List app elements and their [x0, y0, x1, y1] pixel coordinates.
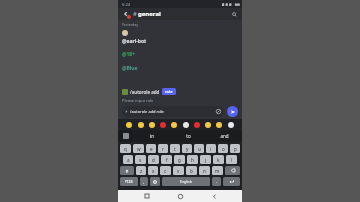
button[interactable]: q	[120, 144, 131, 153]
staticText: j	[205, 157, 207, 163]
staticText: ,	[143, 179, 145, 184]
staticText: Please input role	[122, 98, 154, 103]
staticText: d	[152, 157, 155, 163]
staticText: c	[164, 168, 167, 174]
button[interactable]: Key	[212, 177, 221, 186]
staticText: a	[127, 157, 130, 163]
button[interactable]: Emoji	[228, 122, 234, 128]
button[interactable]: Emoji	[183, 122, 189, 128]
button[interactable]: Send	[227, 106, 238, 117]
staticText: y	[186, 146, 189, 152]
button[interactable]: a	[123, 155, 133, 164]
button[interactable]: /autorole add role	[122, 106, 224, 117]
button[interactable]: w	[133, 144, 144, 153]
staticText: 5:24	[122, 2, 130, 7]
button[interactable]: x	[148, 166, 158, 175]
staticText: #	[133, 10, 137, 18]
button[interactable]: Emoji	[205, 122, 211, 128]
button[interactable]: p	[230, 144, 240, 153]
button[interactable]: Back	[121, 9, 131, 19]
staticText: English	[180, 179, 192, 184]
staticText: n	[203, 168, 206, 174]
button[interactable]: Emoji keyboard	[118, 130, 134, 142]
staticText: q	[124, 146, 127, 152]
button[interactable]: Key	[120, 177, 138, 186]
staticText: s	[139, 157, 142, 163]
button[interactable]: Emoji	[194, 122, 200, 128]
staticText: v	[177, 168, 180, 174]
staticText: i	[210, 146, 212, 152]
button[interactable]: c	[160, 166, 171, 175]
staticText: /autorole add role	[130, 109, 164, 114]
button[interactable]: and	[206, 130, 242, 142]
button[interactable]: Emoji	[171, 122, 177, 128]
button[interactable]: e	[146, 144, 156, 153]
button[interactable]: o	[218, 144, 228, 153]
button[interactable]: Key	[150, 177, 160, 186]
button[interactable]: z	[136, 166, 146, 175]
button[interactable]: u	[194, 144, 204, 153]
staticText: x	[152, 168, 155, 174]
button[interactable]: l	[226, 155, 237, 164]
staticText: @earl-bot	[122, 38, 147, 45]
staticText: to	[186, 133, 191, 139]
staticText: k	[217, 157, 220, 163]
staticText: in	[150, 133, 154, 139]
button[interactable]: English	[162, 177, 210, 186]
button[interactable]: Key	[120, 166, 134, 175]
button[interactable]: k	[213, 155, 224, 164]
button[interactable]: Emoji	[149, 122, 155, 128]
button[interactable]: r	[158, 144, 168, 153]
staticText: o	[222, 146, 225, 152]
staticText: r	[162, 146, 164, 152]
staticText: @18+	[122, 51, 136, 58]
staticText: /autorole add	[130, 89, 160, 95]
button[interactable]: in	[134, 130, 170, 142]
button[interactable]: v	[173, 166, 184, 175]
staticText: l	[231, 157, 233, 163]
staticText: .	[216, 179, 218, 184]
button[interactable]: s	[135, 155, 146, 164]
staticText: t	[174, 146, 176, 152]
button[interactable]: Emoji	[126, 122, 132, 128]
button[interactable]: Home	[175, 191, 185, 201]
button[interactable]: f	[161, 155, 172, 164]
button[interactable]: Recents	[142, 191, 152, 201]
button[interactable]: i	[206, 144, 216, 153]
button[interactable]: n	[199, 166, 210, 175]
button[interactable]: to	[170, 130, 206, 142]
staticText: Yesterday	[122, 22, 138, 27]
staticText: z	[140, 168, 143, 174]
staticText: m	[215, 168, 220, 174]
button[interactable]: m	[212, 166, 223, 175]
staticText: p	[234, 146, 237, 152]
button[interactable]: role	[162, 88, 176, 95]
staticText: role	[165, 89, 173, 94]
staticText: and	[220, 133, 229, 139]
button[interactable]: Search	[230, 10, 239, 19]
staticText: b	[190, 168, 193, 174]
button[interactable]: t	[170, 144, 180, 153]
button[interactable]: Back	[209, 191, 219, 201]
button[interactable]: j	[200, 155, 211, 164]
button[interactable]: Emoji	[216, 122, 222, 128]
staticText: general	[138, 10, 161, 18]
staticText: g	[178, 157, 181, 163]
button[interactable]: Key	[225, 166, 240, 175]
button[interactable]: h	[187, 155, 198, 164]
button[interactable]: Emoji	[160, 122, 166, 128]
button[interactable]: g	[174, 155, 185, 164]
staticText: e	[150, 146, 153, 152]
button[interactable]: Key	[140, 177, 148, 186]
staticText: @Blue	[122, 65, 138, 72]
staticText: h	[191, 157, 194, 163]
staticText: f	[166, 157, 168, 163]
staticText: u	[198, 146, 201, 152]
staticText: ?123	[125, 179, 133, 184]
button[interactable]: Key	[223, 177, 240, 186]
button[interactable]: d	[148, 155, 159, 164]
staticText: w	[137, 146, 141, 152]
button[interactable]: b	[186, 166, 197, 175]
button[interactable]: Emoji	[138, 122, 144, 128]
button[interactable]: y	[182, 144, 192, 153]
